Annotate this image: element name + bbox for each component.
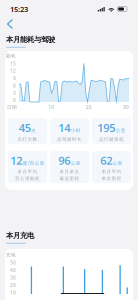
- button[interactable]: 45: [8, 118, 47, 144]
- staticText: 总驾驶时长: [57, 136, 82, 142]
- staticText: 40: [10, 267, 16, 273]
- staticText: 充电: [6, 252, 16, 258]
- staticText: 本月充电: [6, 231, 34, 240]
- button[interactable]: 14: [50, 118, 89, 144]
- staticText: 45: [19, 120, 31, 135]
- button[interactable]: 12: [8, 151, 47, 183]
- staticText: 20: [86, 104, 92, 110]
- staticText: 公里: [113, 160, 123, 166]
- staticText: 14: [58, 120, 70, 135]
- staticText: 能耗: [6, 53, 16, 59]
- staticText: 日期: [7, 104, 17, 110]
- staticText: 50: [10, 259, 16, 266]
- staticText: 本月能耗与驾驶: [6, 35, 55, 44]
- staticText: 30: [123, 104, 129, 110]
- staticText: 总行驶里程: [99, 136, 124, 142]
- staticText: 10: [48, 104, 54, 110]
- staticText: 最远里程: [59, 176, 79, 181]
- staticText: 度/百公里: [23, 160, 45, 166]
- staticText: 62: [100, 153, 112, 168]
- staticText: 9: [13, 75, 16, 81]
- staticText: 15:23: [10, 4, 28, 14]
- staticText: 公里: [71, 160, 81, 166]
- staticText: 小时: [71, 128, 81, 133]
- button[interactable]: 62: [92, 151, 131, 183]
- staticText: 195: [97, 120, 115, 135]
- staticText: 0: [13, 97, 16, 103]
- button[interactable]: Back: [3, 17, 19, 31]
- staticText: 次: [31, 128, 36, 133]
- button[interactable]: 96: [50, 151, 89, 183]
- staticText: 20: [10, 282, 16, 288]
- staticText: 本月平均: [17, 169, 37, 175]
- staticText: 12: [10, 68, 16, 74]
- staticText: 96: [58, 153, 70, 168]
- staticText: 15: [10, 60, 16, 67]
- staticText: 单次里程: [101, 176, 121, 181]
- staticText: 本月平均: [101, 169, 121, 175]
- staticText: 30: [10, 274, 16, 281]
- staticText: 10: [10, 289, 16, 296]
- staticText: 12: [10, 153, 22, 168]
- staticText: 本月单次: [59, 169, 79, 175]
- button[interactable]: 195: [92, 118, 131, 144]
- staticText: 6: [13, 82, 16, 89]
- staticText: 百公里能耗: [15, 176, 40, 181]
- staticText: 3: [13, 90, 16, 96]
- staticText: 公里: [116, 128, 126, 133]
- staticText: 出行次数: [17, 136, 37, 142]
